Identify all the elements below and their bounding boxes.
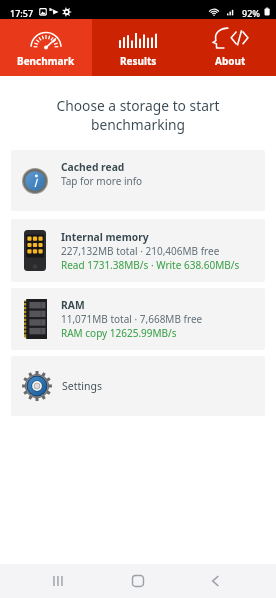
button[interactable]: About	[184, 19, 276, 76]
staticText: Settings	[62, 379, 102, 393]
staticText: Results	[120, 54, 157, 68]
staticText: About	[215, 54, 246, 68]
staticText: Cached read	[61, 160, 125, 174]
staticText: RAM	[61, 298, 85, 312]
button[interactable]: Cached read	[11, 150, 265, 211]
staticText: 227,132MB total · 210,406MB free	[61, 244, 220, 258]
staticText: RAM copy 12625.99MB/s	[61, 326, 177, 340]
staticText: Benchmark	[17, 54, 75, 68]
staticText: 11,071MB total · 7,668MB free	[61, 312, 203, 326]
button[interactable]: Benchmark	[0, 19, 92, 76]
button[interactable]: RAM	[11, 288, 265, 350]
button[interactable]: Internal memory	[11, 219, 265, 282]
staticText: Choose a storage to start benchmarking	[30, 96, 246, 134]
button[interactable]: Results	[92, 19, 184, 76]
staticText: 92%	[242, 7, 260, 19]
staticText: Tap for more info	[61, 174, 143, 188]
staticText: 17:57	[10, 7, 34, 19]
staticText: Internal memory	[61, 230, 149, 244]
button[interactable]: Settings	[11, 356, 265, 416]
staticText: Read 1731.38MB/s · Write 638.60MB/s	[61, 258, 240, 272]
